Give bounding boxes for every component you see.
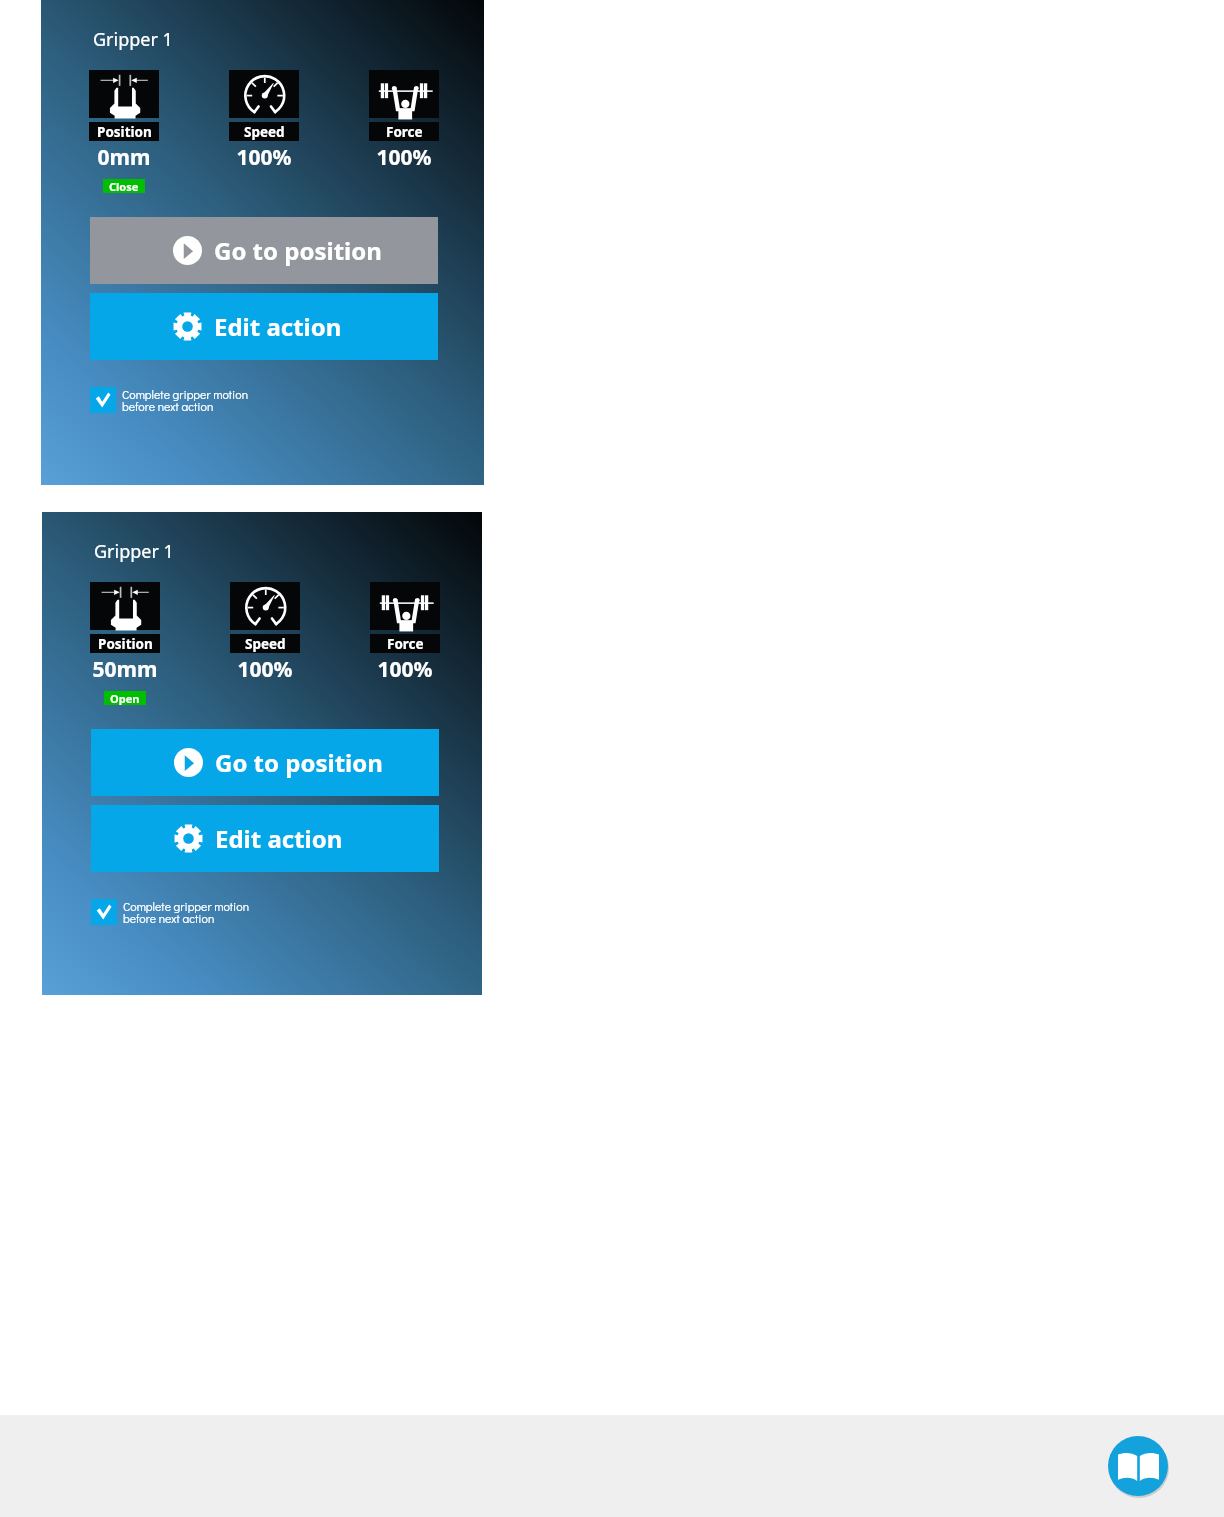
staticText: Speed <box>245 635 286 653</box>
staticText: 50mm <box>90 655 160 684</box>
staticText: Gripper 1 <box>93 27 173 52</box>
button[interactable]: Open documentation <box>1108 1436 1168 1496</box>
staticText: Go to position <box>215 746 383 779</box>
button[interactable]: Edit action <box>90 293 438 360</box>
staticText: Open <box>110 691 140 705</box>
staticText: 100% <box>370 655 440 684</box>
button[interactable]: Complete gripper motion before next acti… <box>91 898 250 926</box>
staticText: Go to position <box>214 234 382 267</box>
staticText: Close <box>109 179 139 193</box>
staticText: 100% <box>369 143 439 172</box>
staticText: Edit action <box>215 822 343 855</box>
staticText: 100% <box>229 143 299 172</box>
button[interactable]: Edit action <box>91 805 439 872</box>
staticText: Gripper 1 <box>94 539 174 564</box>
staticText: Edit action <box>214 310 342 343</box>
staticText: Position <box>98 635 153 653</box>
staticText: 0mm <box>89 143 159 172</box>
staticText: Speed <box>244 123 285 141</box>
button[interactable]: Go to position <box>91 729 439 796</box>
staticText: Force <box>386 123 423 141</box>
staticText: 100% <box>230 655 300 684</box>
staticText: Complete gripper motion before next acti… <box>123 898 250 926</box>
staticText: Position <box>97 123 152 141</box>
staticText: Force <box>387 635 424 653</box>
button[interactable]: Go to position <box>90 217 438 284</box>
button[interactable]: Complete gripper motion before next acti… <box>90 386 249 414</box>
staticText: Complete gripper motion before next acti… <box>122 386 249 414</box>
